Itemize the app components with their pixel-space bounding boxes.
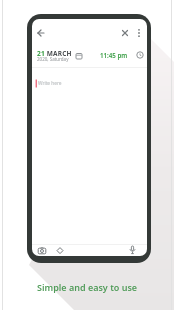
button[interactable] <box>75 52 83 60</box>
button[interactable] <box>37 246 47 255</box>
staticText: 21 MARCH <box>37 49 72 58</box>
button[interactable] <box>35 27 47 39</box>
staticText: Simple and easy to use <box>37 281 138 293</box>
button[interactable] <box>119 27 131 39</box>
button[interactable] <box>55 246 65 255</box>
button[interactable] <box>133 27 145 39</box>
button[interactable] <box>128 245 137 255</box>
staticText: 2020, Saturday <box>37 56 69 62</box>
button[interactable]: 21 MARCH <box>37 49 72 58</box>
button[interactable]: Write here <box>32 74 147 94</box>
staticText: 11:45 pm <box>100 51 128 59</box>
button[interactable]: 11:45 pm <box>100 51 128 59</box>
staticText: Write here <box>38 80 62 87</box>
button[interactable] <box>136 51 144 59</box>
